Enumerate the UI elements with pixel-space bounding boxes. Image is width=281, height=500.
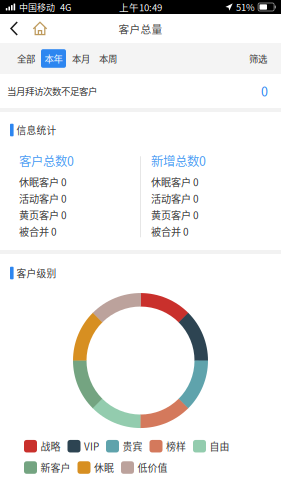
staticText: 自由 — [209, 439, 229, 453]
button[interactable]: 当月拜访次数不足客户 — [0, 74, 281, 108]
staticText: VIP — [84, 439, 99, 453]
button[interactable]: 本周 — [96, 49, 120, 68]
staticText: 贵宾 — [122, 439, 142, 453]
staticText: 休眠客户 0 — [19, 174, 67, 189]
staticText: 客户级别 — [17, 266, 57, 280]
staticText: 战略 — [40, 439, 60, 453]
button[interactable]: 本年 — [41, 49, 66, 68]
staticText: 客户总量 — [118, 21, 162, 36]
button[interactable]: Back — [0, 14, 27, 43]
staticText: 榜样 — [166, 439, 186, 453]
staticText: 51% — [236, 0, 255, 14]
button[interactable]: 筛选 — [246, 49, 270, 68]
staticText: 休眠 — [94, 460, 114, 475]
staticText: 筛选 — [249, 52, 267, 65]
staticText: 0 — [261, 82, 268, 100]
staticText: 休眠客户 0 — [151, 174, 199, 189]
staticText: 本周 — [99, 52, 117, 65]
staticText: 信息统计 — [17, 123, 57, 137]
staticText: 活动客户 0 — [151, 191, 199, 206]
staticText: 本月 — [72, 52, 90, 65]
staticText: 中国移动 — [19, 0, 55, 13]
staticText: 新客户 — [40, 460, 70, 475]
staticText: 黄页客户 0 — [19, 207, 67, 222]
staticText: 黄页客户 0 — [151, 207, 199, 222]
staticText: 当月拜访次数不足客户 — [7, 84, 97, 98]
staticText: 本年 — [44, 52, 62, 65]
staticText: 新增总数0 — [151, 152, 206, 170]
staticText: 低价值 — [137, 460, 167, 475]
button[interactable]: 全部 — [14, 49, 38, 68]
staticText: 被合并 0 — [19, 224, 57, 239]
staticText: 全部 — [17, 52, 35, 65]
button[interactable]: 本月 — [69, 49, 93, 68]
staticText: 被合并 0 — [151, 224, 189, 239]
button[interactable]: Home — [27, 14, 52, 43]
staticText: 上午10:49 — [119, 0, 162, 14]
staticText: 4G — [60, 0, 71, 14]
staticText: 客户总数0 — [19, 152, 74, 170]
staticText: 活动客户 0 — [19, 191, 67, 206]
